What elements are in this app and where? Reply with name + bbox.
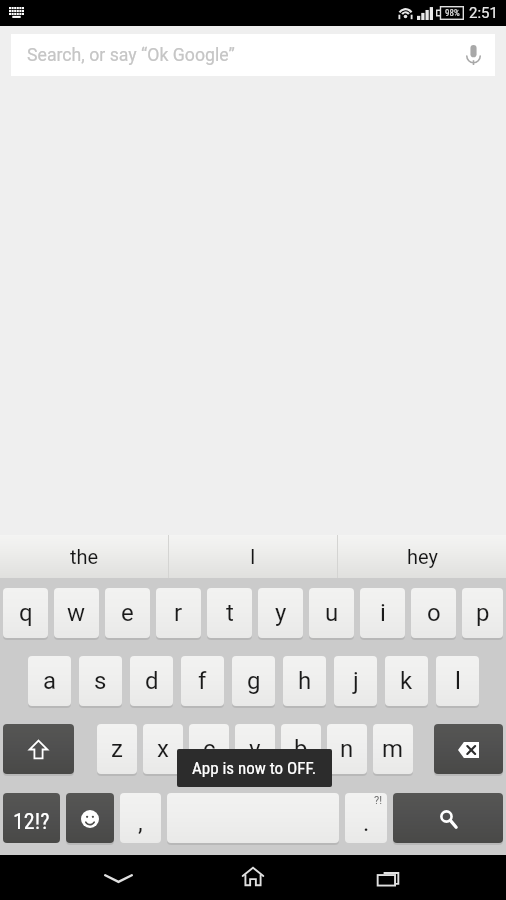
button[interactable]: w	[54, 588, 99, 640]
button[interactable]: Emoji	[66, 793, 114, 845]
staticText: y	[275, 599, 287, 627]
staticText: e	[121, 599, 134, 627]
button[interactable]: p	[462, 588, 503, 640]
staticText: the	[70, 545, 99, 568]
button[interactable]: a	[28, 656, 71, 708]
staticText: g	[247, 667, 261, 695]
button[interactable]: q	[3, 588, 48, 640]
button[interactable]: Shift	[3, 724, 74, 776]
staticText: ?!	[374, 794, 383, 807]
button[interactable]: Search, or say “Ok Google”	[11, 34, 495, 76]
button[interactable]: b	[281, 724, 321, 776]
staticText: App is now to OFF.	[192, 758, 317, 778]
other: Voice search	[466, 45, 481, 65]
button[interactable]: r	[156, 588, 201, 640]
button[interactable]: I	[169, 535, 337, 578]
button[interactable]: g	[232, 656, 275, 708]
button[interactable]: j	[334, 656, 377, 708]
button[interactable]: d	[130, 656, 173, 708]
button[interactable]: z	[97, 724, 137, 776]
button[interactable]: f	[181, 656, 224, 708]
button[interactable]: h	[283, 656, 326, 708]
staticText: p	[476, 599, 490, 627]
staticText: r	[174, 599, 183, 627]
button[interactable]: Hide keyboard	[74, 855, 162, 900]
staticText: u	[325, 599, 339, 627]
button[interactable]: e	[105, 588, 150, 640]
staticText: .	[363, 809, 370, 837]
staticText: q	[19, 599, 33, 627]
button[interactable]: n	[327, 724, 367, 776]
button[interactable]: l	[436, 656, 479, 708]
button[interactable]: t	[207, 588, 252, 640]
staticText: n	[340, 735, 354, 763]
button[interactable]: s	[79, 656, 122, 708]
button[interactable]: hey	[338, 535, 506, 578]
staticText: I	[250, 545, 256, 568]
staticText: s	[94, 667, 107, 695]
button[interactable]: 12!?	[3, 793, 60, 843]
staticText: Search, or say “Ok Google”	[27, 45, 235, 66]
staticText: d	[145, 667, 159, 695]
staticText: f	[198, 667, 207, 695]
button[interactable]: o	[411, 588, 456, 640]
button[interactable]: c	[189, 724, 229, 776]
staticText: m	[382, 735, 404, 763]
button[interactable]: Recent apps	[344, 855, 432, 900]
button[interactable]: Space	[167, 793, 339, 845]
button[interactable]: v	[235, 724, 275, 776]
button[interactable]: x	[143, 724, 183, 776]
staticText: z	[111, 735, 123, 763]
staticText: a	[43, 667, 57, 695]
button[interactable]: m	[373, 724, 413, 776]
button[interactable]: i	[360, 588, 405, 640]
staticText: v	[249, 735, 261, 763]
staticText: 12!?	[13, 809, 50, 835]
staticText: 2:51	[469, 4, 498, 22]
button[interactable]: ,	[120, 793, 161, 843]
staticText: x	[157, 735, 169, 763]
staticText: k	[400, 667, 413, 695]
staticText: ,	[138, 809, 143, 837]
staticText: o	[427, 599, 441, 627]
staticText: hey	[407, 545, 438, 568]
button[interactable]: Home	[209, 855, 297, 900]
staticText: w	[67, 599, 86, 627]
button[interactable]: y	[258, 588, 303, 640]
staticText: h	[298, 667, 312, 695]
button[interactable]: u	[309, 588, 354, 640]
staticText: j	[353, 667, 359, 695]
button[interactable]: k	[385, 656, 428, 708]
staticText: l	[455, 667, 461, 695]
button[interactable]: Backspace	[434, 724, 503, 776]
button[interactable]: Search	[393, 793, 503, 845]
staticText: b	[294, 735, 308, 763]
button[interactable]: ?!	[345, 793, 387, 843]
staticText: c	[203, 735, 216, 763]
button[interactable]: the	[0, 535, 168, 578]
staticText: 98%	[445, 8, 460, 19]
staticText: t	[226, 599, 234, 627]
staticText: i	[380, 599, 386, 627]
